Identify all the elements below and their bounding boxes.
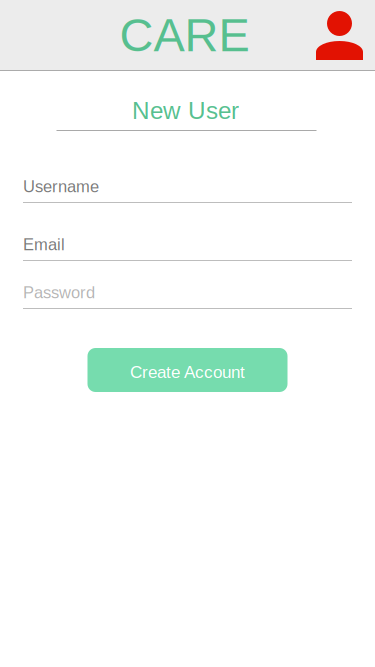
staticText: CARE	[119, 9, 249, 61]
staticText: Create Account	[130, 362, 245, 382]
button[interactable]: Password	[23, 285, 352, 309]
button[interactable]: Username	[23, 179, 352, 203]
staticText: Email	[23, 235, 65, 254]
staticText: Password	[23, 283, 95, 302]
staticText: New User	[132, 97, 239, 124]
button[interactable]: Account	[316, 8, 375, 62]
button[interactable]: Create Account	[87, 348, 287, 392]
staticText: Username	[23, 177, 99, 196]
button[interactable]: Email	[23, 237, 352, 261]
